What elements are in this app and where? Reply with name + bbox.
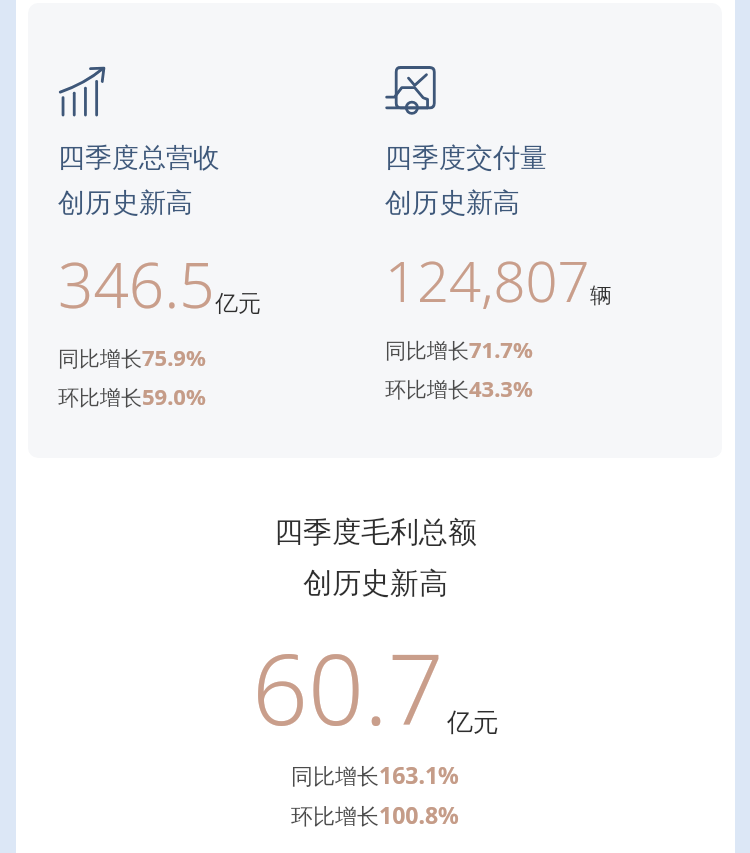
- staticText: 四季度总营收: [58, 141, 220, 175]
- staticText: 346.5: [58, 242, 215, 326]
- other: Revenue growth: [58, 63, 114, 119]
- staticText: 同比增长71.7%: [385, 334, 533, 364]
- staticText: 60.7: [252, 620, 444, 753]
- other: Vehicle deliveries: [385, 63, 441, 119]
- staticText: 同比增长75.9%: [58, 342, 206, 372]
- button[interactable]: Revenue growth: [58, 63, 375, 458]
- staticText: 辆: [590, 282, 612, 310]
- staticText: 亿元: [215, 289, 261, 318]
- staticText: 创历史新高: [58, 186, 193, 220]
- staticText: 亿元: [447, 706, 499, 739]
- staticText: 创历史新高: [385, 186, 520, 220]
- button[interactable]: Vehicle deliveries: [385, 63, 722, 458]
- staticText: 124,807: [385, 242, 590, 318]
- staticText: 四季度毛利总额: [274, 514, 477, 551]
- staticText: 环比增长100.8%: [291, 799, 459, 830]
- staticText: 环比增长43.3%: [385, 373, 533, 403]
- staticText: 创历史新高: [303, 565, 448, 602]
- staticText: 同比增长163.1%: [291, 759, 459, 790]
- staticText: 四季度交付量: [385, 141, 547, 175]
- button[interactable]: Revenue growth: [28, 3, 722, 458]
- staticText: 环比增长59.0%: [58, 381, 206, 411]
